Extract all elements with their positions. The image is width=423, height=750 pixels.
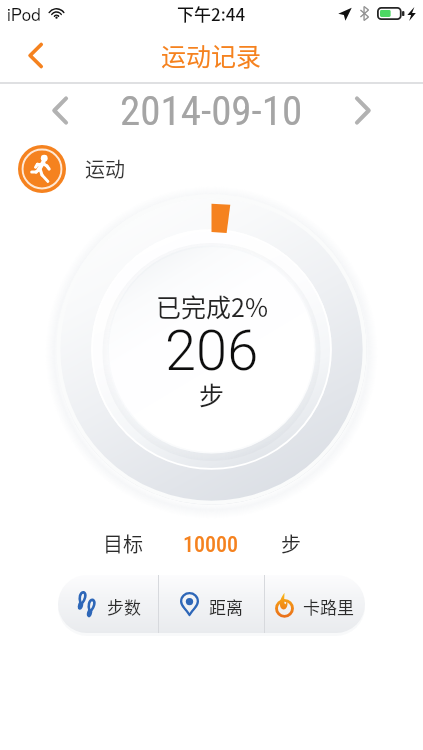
button[interactable]: 卡路里 bbox=[265, 575, 365, 633]
staticText: 已完成2% bbox=[156, 288, 268, 324]
staticText: 206 bbox=[165, 318, 259, 384]
button[interactable]: Sport bbox=[18, 145, 66, 193]
button[interactable]: Next day bbox=[341, 88, 385, 132]
staticText: 步 bbox=[199, 376, 225, 412]
button[interactable]: Previous day bbox=[38, 88, 82, 132]
staticText: 运动 bbox=[85, 154, 125, 183]
staticText: 步 bbox=[281, 529, 301, 558]
staticText: 2014-09-10 bbox=[120, 87, 303, 135]
button[interactable]: 步数 bbox=[58, 575, 158, 633]
staticText: 下午2:44 bbox=[177, 1, 246, 26]
staticText: 步数 bbox=[107, 594, 141, 619]
staticText: 距离 bbox=[209, 594, 243, 619]
staticText: iPod bbox=[7, 1, 41, 25]
staticText: 卡路里 bbox=[303, 594, 354, 619]
staticText: 10000 bbox=[183, 532, 238, 558]
staticText: 运动记录 bbox=[161, 37, 262, 73]
button[interactable]: Back bbox=[13, 33, 57, 77]
staticText: 目标 bbox=[103, 529, 143, 558]
button[interactable]: 距离 bbox=[159, 575, 264, 633]
